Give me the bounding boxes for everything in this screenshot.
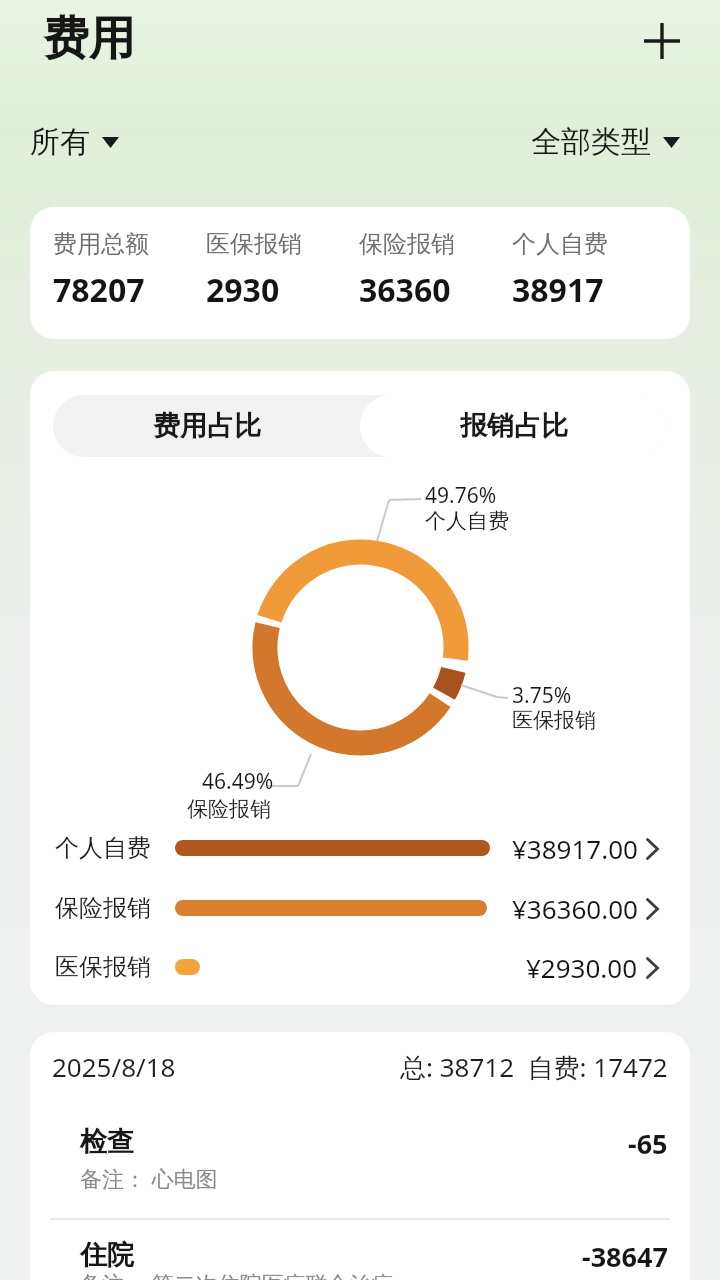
button[interactable]: 保险报销 — [30, 888, 690, 928]
staticText: 医保报销 — [206, 229, 302, 259]
button[interactable]: 报销占比 — [360, 395, 667, 457]
staticText: 总: 38712 自费: 17472 — [400, 1049, 668, 1085]
staticText: ¥2930.00 — [526, 950, 638, 985]
staticText: 住院 — [80, 1238, 134, 1272]
staticText: 医保报销 — [55, 952, 151, 982]
staticText: 3.75% — [512, 681, 572, 710]
button[interactable]: 住院 — [30, 1233, 690, 1280]
button[interactable]: 所有 — [30, 123, 119, 161]
staticText: 检查 — [80, 1125, 134, 1159]
staticText: 费用占比 — [153, 409, 261, 443]
staticText: 保险报销 — [359, 229, 455, 259]
staticText: 备注： 第二次住院医疗联合治疗 — [80, 1268, 394, 1280]
staticText: 46.49% — [202, 767, 274, 796]
staticText: ¥38917.00 — [512, 831, 638, 866]
staticText: 保险报销 — [55, 893, 151, 923]
staticText: 报销占比 — [460, 409, 568, 443]
button[interactable]: 全部类型 — [531, 123, 680, 161]
staticText: -38647 — [582, 1238, 668, 1275]
staticText: 费用总额 — [53, 229, 149, 259]
staticText: 费用 — [43, 10, 135, 68]
button[interactable]: 医保报销 — [30, 947, 690, 987]
staticText: 78207 — [53, 268, 145, 312]
button[interactable] — [638, 17, 686, 65]
staticText: ¥36360.00 — [512, 891, 638, 926]
staticText: 保险报销 — [187, 796, 271, 822]
button[interactable]: 费用占比 — [53, 395, 360, 457]
staticText: -65 — [628, 1125, 668, 1162]
staticText: 全部类型 — [531, 123, 651, 161]
staticText: 49.76% — [425, 481, 497, 510]
staticText: 所有 — [30, 123, 90, 161]
button[interactable]: 检查 — [30, 1120, 690, 1180]
staticText: 2930 — [206, 268, 280, 312]
button[interactable]: 个人自费 — [30, 828, 690, 868]
staticText: 36360 — [359, 268, 451, 312]
staticText: 备注： 心电图 — [80, 1163, 218, 1193]
staticText: 医保报销 — [512, 707, 596, 733]
staticText: 38917 — [512, 268, 604, 312]
staticText: 2025/8/18 — [52, 1049, 176, 1084]
staticText: 个人自费 — [55, 833, 151, 863]
staticText: 个人自费 — [512, 229, 608, 259]
staticText: 个人自费 — [425, 508, 509, 534]
